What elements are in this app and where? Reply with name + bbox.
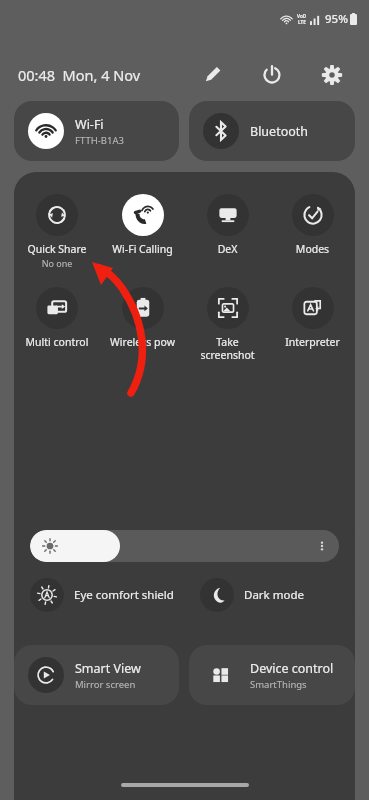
staticText: FTTH-B1A3 [75,134,124,147]
button[interactable]: DeX [185,192,270,258]
staticText: Mirror screen [75,678,136,691]
staticText: Interpreter [270,335,355,349]
button[interactable]: Smart View [14,645,179,705]
button[interactable]: Device control [189,645,355,705]
staticText: Smart View [75,660,141,677]
button[interactable]: Modes [270,192,355,258]
button[interactable]: Wi-Fi [14,101,179,161]
staticText: Device control [250,660,334,677]
staticText: Wi-Fi Calling [100,242,185,256]
staticText: SmartThings [250,678,307,691]
staticText: 95% [325,11,348,27]
button[interactable]: Wi-Fi Calling [100,192,185,258]
button[interactable]: Settings [315,58,349,92]
button[interactable]: Interpreter [270,285,355,351]
staticText: No one [14,257,100,269]
staticText: Wireless pow [100,335,185,349]
staticText: Modes [270,242,355,256]
button[interactable]: Bluetooth [189,101,355,161]
button[interactable]: Eye comfort shield [14,578,184,612]
staticText: Bluetooth [250,123,309,140]
staticText: Wi-Fi [75,116,104,133]
staticText: LTE [298,19,306,25]
staticText: Take screenshot [185,335,270,362]
button[interactable]: Dark mode [184,578,355,612]
staticText: Multi control [14,335,100,349]
staticText: Eye comfort shield [74,587,174,603]
button[interactable] [30,530,339,562]
button[interactable]: Multi control [14,285,100,351]
button[interactable]: Take screenshot [185,285,270,364]
button[interactable]: Power [255,58,289,92]
staticText: Dark mode [244,587,304,603]
button[interactable]: Quick Share [14,192,100,271]
staticText: 00:48 Mon, 4 Nov [18,65,141,85]
staticText: Quick Share [14,242,100,256]
staticText: VoD [297,13,307,19]
button[interactable]: Edit [195,58,229,92]
button[interactable]: Wireless pow [100,285,185,351]
staticText: DeX [185,242,270,256]
